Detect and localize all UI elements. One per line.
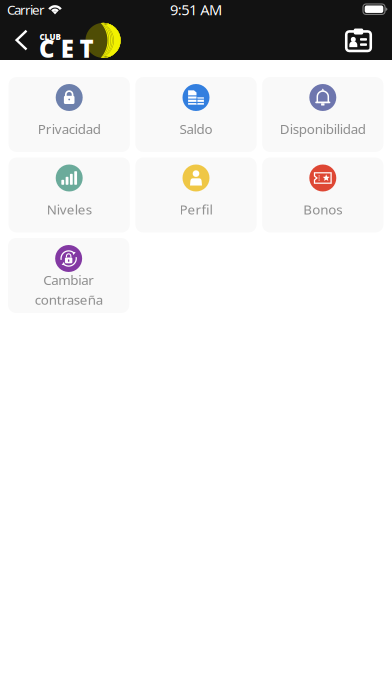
staticText: Perfil — [179, 200, 212, 218]
button[interactable]: Saldo — [135, 77, 257, 152]
button[interactable]: Perfil — [135, 157, 257, 232]
staticText: Carrier — [7, 1, 45, 18]
button[interactable]: Disponibilidad — [262, 77, 383, 152]
staticText: Saldo — [179, 120, 212, 138]
staticText: Niveles — [47, 200, 92, 218]
staticText: contraseña — [35, 291, 103, 308]
button[interactable]: Privacidad — [9, 77, 130, 152]
staticText: CET — [39, 33, 94, 64]
staticText: Privacidad — [38, 120, 101, 138]
button[interactable]: Cambiar — [8, 238, 129, 313]
staticText: Cambiar — [43, 271, 94, 289]
button[interactable]: Credencial — [334, 20, 392, 60]
staticText: Bonos — [303, 200, 342, 218]
button[interactable]: Atrás — [0, 20, 39, 60]
staticText: CLUB — [39, 32, 60, 42]
staticText: Disponibilidad — [280, 120, 366, 138]
button[interactable]: Niveles — [9, 157, 130, 232]
button[interactable]: Bonos — [262, 157, 383, 232]
staticText: 9:51 AM — [170, 0, 222, 19]
